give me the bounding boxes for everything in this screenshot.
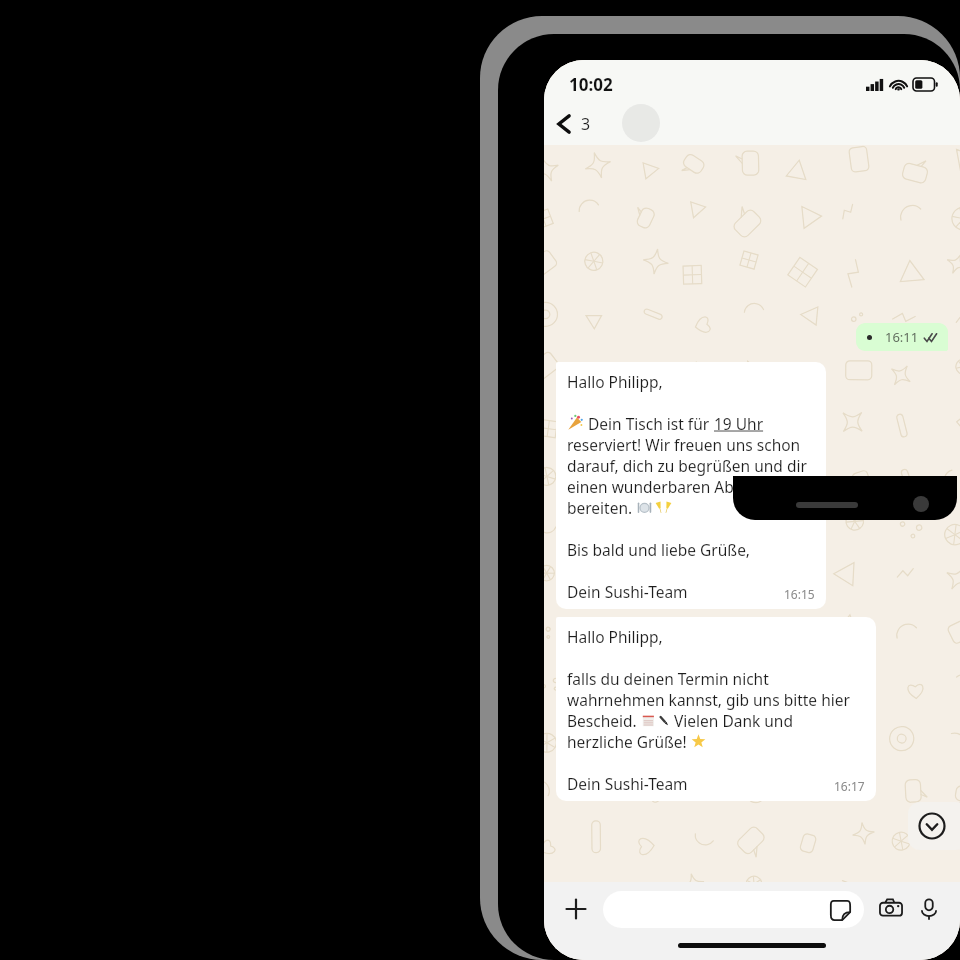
staticText: Dein Sushi-Team: [567, 581, 688, 602]
button[interactable]: 16:11: [856, 323, 948, 351]
button[interactable]: Voice message: [912, 892, 946, 926]
button[interactable]: Stickers: [827, 897, 853, 923]
staticText: darauf, dich zu begrüßen und dir: [567, 455, 807, 476]
staticText: Bescheid.: [567, 710, 641, 731]
staticText: Hallo Philipp,: [567, 371, 663, 392]
staticText: Vielen Dank und: [674, 710, 793, 731]
button[interactable]: Attach: [558, 891, 594, 927]
button[interactable]: 3: [556, 103, 591, 145]
staticText: falls du deinen Termin nicht: [567, 668, 769, 689]
staticText: reserviert! Wir freuen uns schon: [567, 434, 801, 455]
staticText: bereiten.: [567, 497, 637, 518]
button[interactable]: Stickers: [603, 891, 864, 928]
staticText: Dein Sushi-Team: [567, 773, 688, 794]
staticText: 3: [581, 113, 591, 135]
button[interactable]: Scroll to bottom: [908, 802, 960, 850]
button[interactable]: Camera: [874, 892, 908, 926]
button[interactable]: Hallo Philipp,: [556, 617, 876, 801]
staticText: Bis bald und liebe Grüße,: [567, 539, 751, 560]
staticText: 19 Uhr: [714, 413, 764, 434]
staticText: Dein Tisch ist für: [588, 413, 714, 434]
staticText: wahrnehmen kannst, gib uns bitte hier: [567, 689, 850, 710]
staticText: einen wunderbaren Abend zu: [567, 476, 783, 497]
staticText: 16:17: [834, 778, 865, 794]
staticText: 10:02: [569, 73, 613, 96]
staticText: Hallo Philipp,: [567, 626, 663, 647]
staticText: 16:15: [784, 586, 815, 602]
button[interactable]: Hallo Philipp,: [556, 362, 826, 609]
staticText: 16:11: [885, 328, 919, 346]
staticText: herzliche Grüße!: [567, 731, 691, 752]
